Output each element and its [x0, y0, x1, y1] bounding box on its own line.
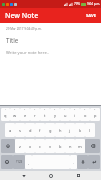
staticText: 9 [84, 108, 86, 111]
button[interactable]: SAVE [82, 8, 101, 23]
staticText: p [94, 113, 97, 118]
button[interactable]: d [25, 123, 35, 137]
button[interactable]: Home [46, 171, 55, 180]
button[interactable]: g [45, 123, 55, 137]
button[interactable]: 9 [80, 108, 90, 121]
staticText: 9:04 p.m. [87, 2, 100, 6]
button[interactable]: Emoji [1, 155, 13, 169]
button[interactable]: , [25, 155, 32, 169]
button[interactable]: . [70, 155, 77, 169]
button[interactable]: h [55, 123, 65, 137]
button[interactable]: z [15, 139, 25, 153]
staticText: c [39, 144, 41, 149]
staticText: 2 [14, 108, 16, 111]
button[interactable]: x [25, 139, 35, 153]
button[interactable]: Enter [88, 155, 100, 169]
button[interactable]: Title [6, 36, 95, 44]
staticText: q [4, 113, 7, 118]
staticText: ?123 [16, 160, 23, 164]
staticText: s [19, 128, 21, 133]
staticText: , [28, 160, 29, 165]
staticText: x [29, 144, 32, 149]
staticText: a [9, 128, 12, 133]
staticText: r [34, 113, 36, 118]
button[interactable]: Write your note here.. [6, 50, 95, 56]
staticText: g [49, 128, 52, 133]
button[interactable]: Shift [1, 139, 15, 153]
button[interactable]: ?123 [13, 155, 25, 169]
staticText: New Note [5, 11, 39, 21]
button[interactable]: 2 [10, 108, 20, 121]
staticText: 4 [34, 108, 36, 111]
staticText: f [39, 128, 41, 133]
button[interactable]: 7 [60, 108, 70, 121]
staticText: u [64, 113, 67, 118]
staticText: 8 [74, 108, 76, 111]
button[interactable]: c [35, 139, 45, 153]
staticText: 5 [44, 108, 46, 111]
button[interactable]: Voice input [77, 155, 88, 169]
button[interactable]: 5 [40, 108, 50, 121]
staticText: 6 [54, 108, 56, 111]
staticText: k [79, 128, 82, 133]
staticText: w [13, 113, 17, 118]
staticText: 0 [94, 108, 96, 111]
staticText: v [49, 144, 52, 149]
staticText: e [24, 113, 27, 118]
button[interactable]: b [55, 139, 65, 153]
staticText: l [89, 128, 91, 133]
button[interactable]: m [75, 139, 85, 153]
button[interactable]: l [85, 123, 95, 137]
staticText: o [84, 113, 87, 118]
staticText: 3 [24, 108, 26, 111]
staticText: b [59, 144, 62, 149]
staticText: i [74, 113, 76, 118]
button[interactable]: n [65, 139, 75, 153]
button[interactable]: a [5, 123, 15, 137]
button[interactable]: New Note [0, 8, 39, 23]
button[interactable]: 8 [70, 108, 80, 121]
staticText: . [73, 160, 74, 165]
button[interactable]: 6 [50, 108, 60, 121]
button[interactable]: 0 [90, 108, 100, 121]
button[interactable]: Recents [74, 171, 83, 180]
button[interactable]: 1 [1, 108, 10, 121]
button[interactable]: v [45, 139, 55, 153]
button[interactable]: f [35, 123, 45, 137]
staticText: z [19, 144, 21, 149]
button[interactable]: s [15, 123, 25, 137]
staticText: t [44, 113, 46, 118]
button[interactable]: Back [19, 171, 28, 180]
button[interactable]: k [75, 123, 85, 137]
staticText: SAVE [86, 13, 97, 19]
staticText: n [69, 144, 72, 149]
staticText: d [29, 128, 32, 133]
button[interactable]: 3 [20, 108, 30, 121]
staticText: Title [6, 36, 19, 44]
staticText: y [54, 113, 57, 118]
staticText: h [59, 128, 62, 133]
staticText: Write your note here.. [6, 50, 49, 56]
button[interactable]: 4 [30, 108, 40, 121]
staticText: 79% [74, 2, 80, 6]
staticText: 29 Mar 2017 9:04:49 p.m. [6, 27, 42, 31]
staticText: m [78, 144, 82, 149]
button[interactable]: j [65, 123, 75, 137]
staticText: j [69, 128, 71, 133]
staticText: 1 [5, 108, 7, 111]
button[interactable]: Backspace [85, 139, 100, 153]
staticText: 7 [64, 108, 66, 111]
